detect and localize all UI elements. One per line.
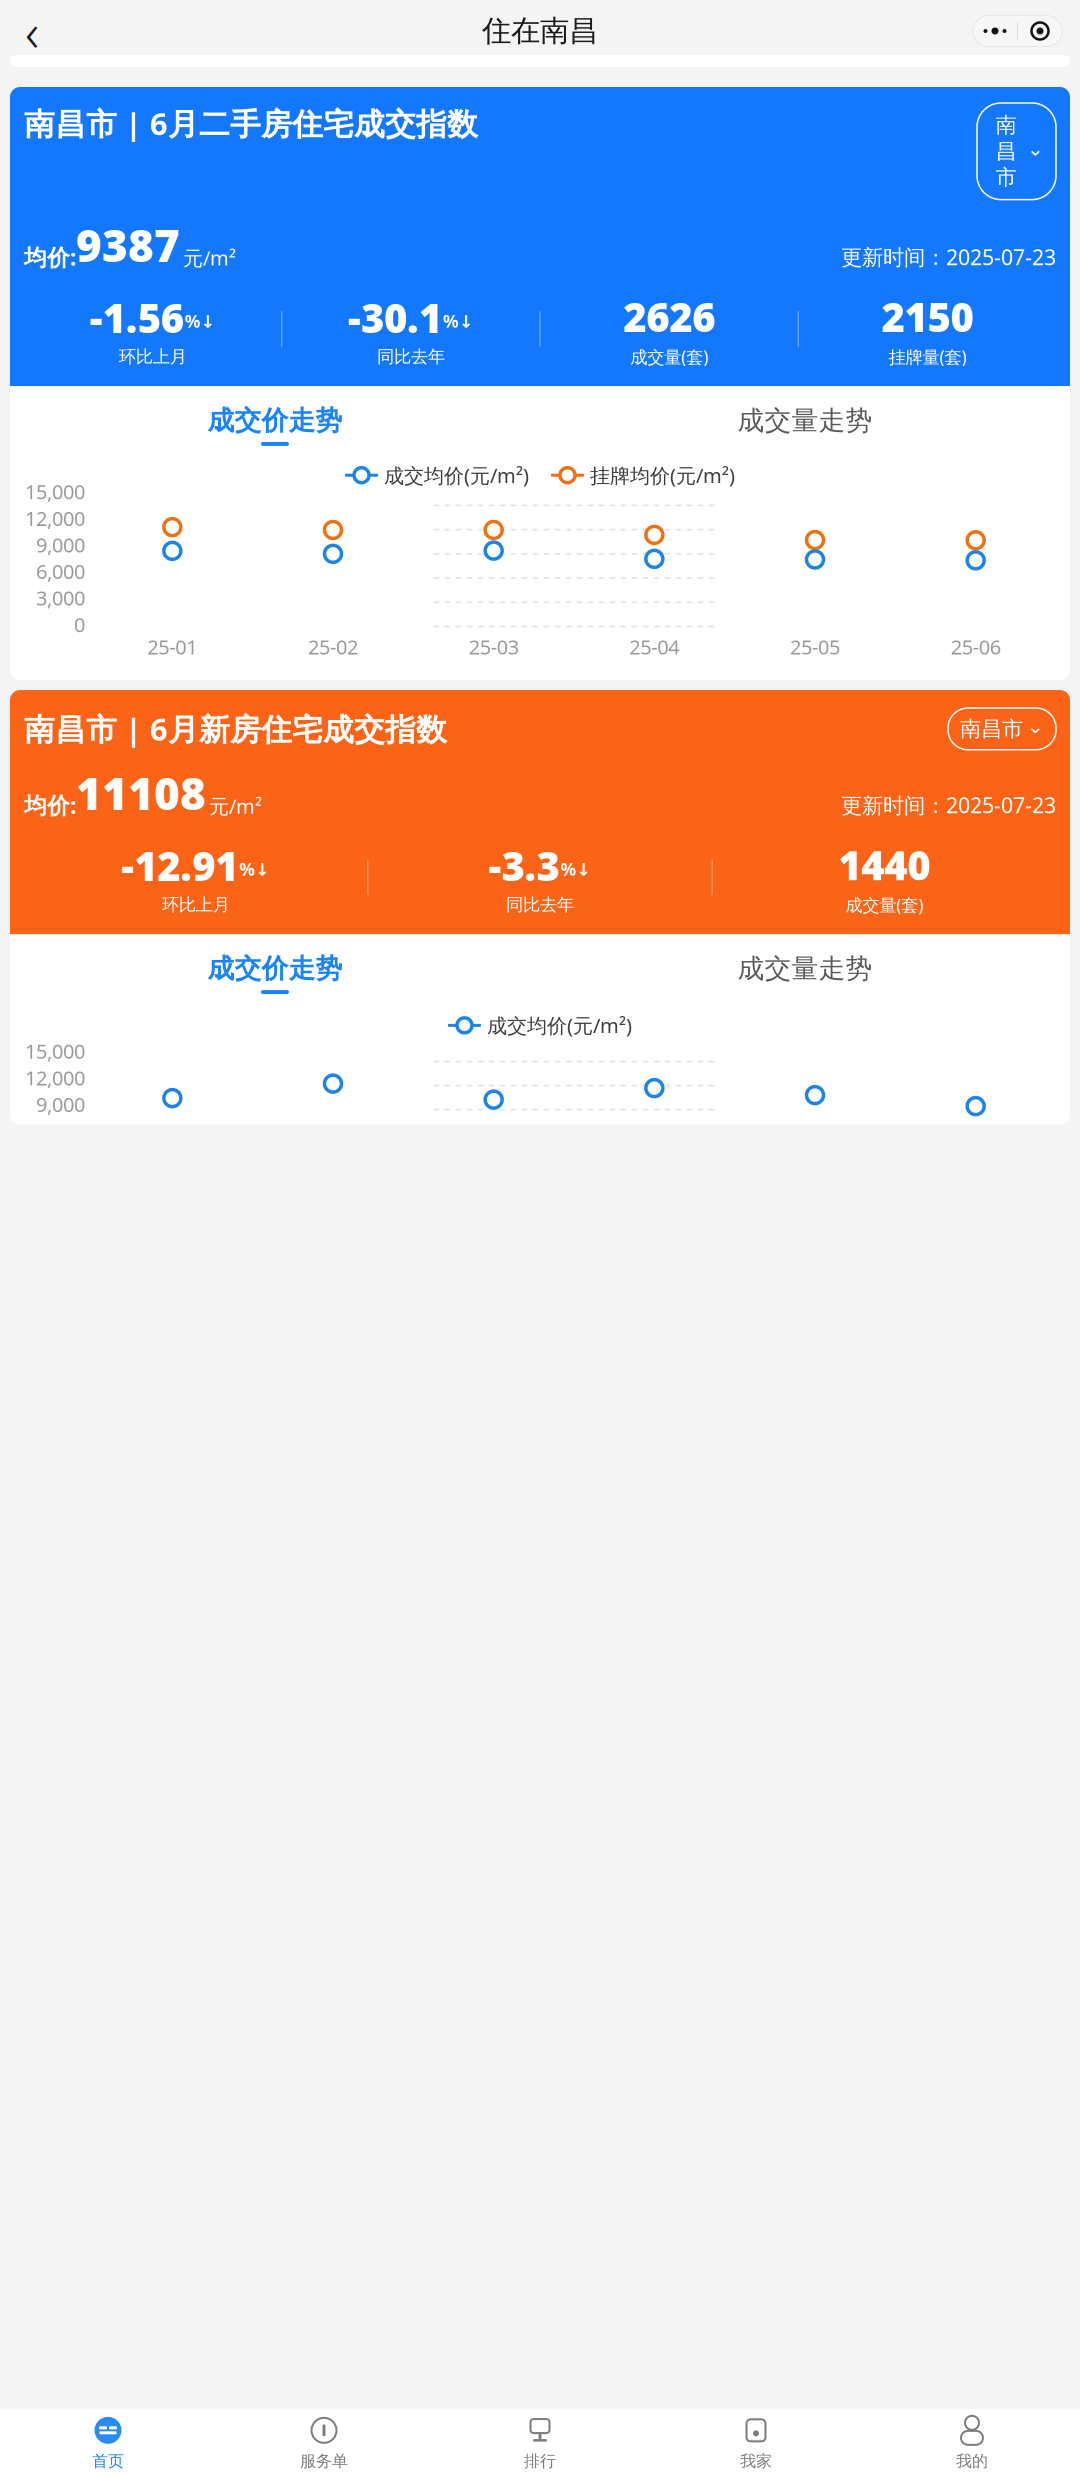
button[interactable]: 南昌市: [977, 103, 1056, 200]
staticText: 环比上月: [162, 894, 230, 915]
staticText: 同比去年: [377, 346, 445, 367]
staticText: 6,000: [36, 558, 85, 585]
staticText: 成交价走势: [207, 952, 342, 985]
staticText: 25-02: [308, 633, 358, 660]
staticText: 成交均价(元/m²): [384, 462, 529, 488]
button[interactable]: 南昌市: [948, 708, 1056, 750]
staticText: 我家: [740, 2451, 772, 2471]
button[interactable]: 我家: [648, 2416, 864, 2471]
staticText: 2150: [881, 290, 973, 343]
staticText: 25-05: [790, 633, 840, 660]
staticText: 均价:: [24, 790, 76, 820]
staticText: 25-06: [951, 633, 1001, 660]
staticText: %↓: [560, 858, 591, 881]
button[interactable]: 排行: [432, 2416, 648, 2471]
staticText: 更新时间：2025-07-23: [841, 791, 1056, 819]
staticText: 南昌市 | 6月新房住宅成交指数: [24, 708, 447, 749]
staticText: 南昌市: [995, 112, 1016, 191]
staticText: 更新时间：2025-07-23: [841, 243, 1056, 271]
staticText: 挂牌均价(元/m²): [590, 462, 735, 488]
button[interactable]: More: [973, 16, 1017, 46]
staticText: -12.91: [121, 839, 238, 892]
staticText: 3,000: [36, 584, 85, 611]
staticText: 均价:: [24, 242, 76, 272]
staticText: 0: [74, 611, 85, 638]
staticText: 排行: [524, 2451, 556, 2471]
staticText: %↓: [185, 309, 216, 332]
staticText: 11108: [76, 764, 206, 822]
staticText: 住在南昌: [482, 13, 598, 49]
staticText: 2626: [623, 290, 715, 343]
button[interactable]: 首页: [0, 2416, 216, 2471]
staticText: 12,000: [25, 505, 85, 531]
button[interactable]: 我的: [864, 2416, 1080, 2471]
staticText: %↓: [239, 858, 270, 881]
staticText: 12,000: [25, 1064, 85, 1091]
staticText: 元/m²: [183, 244, 236, 271]
staticText: -1.56: [90, 291, 184, 344]
staticText: %↓: [443, 309, 474, 332]
staticText: 成交均价(元/m²): [487, 1012, 632, 1039]
staticText: ‹: [25, 0, 39, 66]
button[interactable]: 成交价走势: [10, 402, 540, 448]
staticText: 同比去年: [506, 894, 574, 915]
staticText: 成交量(套): [845, 893, 923, 916]
staticText: 9,000: [36, 1091, 85, 1117]
staticText: 9,000: [36, 531, 85, 558]
staticText: ⌄: [1027, 137, 1044, 160]
staticText: ⌄: [1027, 715, 1044, 738]
staticText: 成交量(套): [630, 345, 708, 368]
staticText: 15,000: [25, 1038, 85, 1064]
staticText: 1440: [838, 838, 930, 891]
staticText: 25-01: [147, 633, 197, 660]
staticText: 元/m²: [209, 793, 262, 819]
staticText: 成交量走势: [737, 404, 872, 437]
staticText: 成交价走势: [207, 404, 342, 437]
staticText: 南昌市 | 6月二手房住宅成交指数: [24, 103, 478, 144]
button[interactable]: Back: [10, 9, 54, 53]
button[interactable]: 成交量走势: [540, 950, 1070, 996]
button[interactable]: 成交量走势: [540, 402, 1070, 448]
staticText: -3.3: [488, 839, 559, 892]
button[interactable]: 成交价走势: [10, 950, 540, 996]
staticText: 首页: [92, 2451, 124, 2471]
staticText: 15,000: [25, 478, 85, 505]
staticText: 9387: [76, 216, 180, 274]
staticText: 我的: [956, 2451, 988, 2471]
staticText: 成交量走势: [737, 952, 872, 985]
staticText: 挂牌量(套): [888, 345, 966, 368]
staticText: 25-03: [469, 633, 519, 660]
staticText: 环比上月: [119, 346, 187, 367]
button[interactable]: Close: [1018, 16, 1062, 46]
staticText: -30.1: [348, 291, 442, 344]
staticText: 25-04: [629, 633, 679, 660]
staticText: 南昌市: [960, 716, 1023, 742]
button[interactable]: 服务单: [216, 2416, 432, 2471]
staticText: 服务单: [300, 2451, 348, 2471]
